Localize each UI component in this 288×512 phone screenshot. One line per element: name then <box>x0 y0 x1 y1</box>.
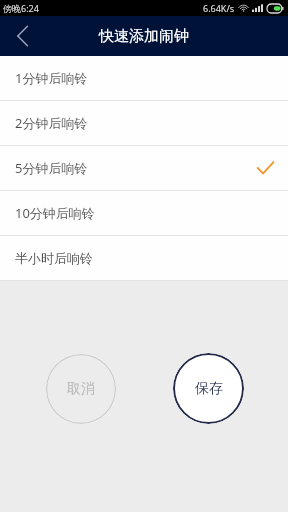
staticText: 2分钟后响铃 <box>15 114 88 132</box>
button[interactable]: 5分钟后响铃 <box>0 146 288 190</box>
staticText: 6.64K/s <box>203 2 235 14</box>
button[interactable]: 2分钟后响铃 <box>0 101 288 145</box>
staticText: 快速添加闹钟 <box>99 27 189 46</box>
button[interactable]: 保存 <box>173 353 244 424</box>
button[interactable]: 半小时后响铃 <box>0 236 288 280</box>
staticText: 半小时后响铃 <box>15 250 93 266</box>
staticText: 取消 <box>67 380 95 398</box>
button[interactable]: Back <box>0 16 44 56</box>
button[interactable]: 1分钟后响铃 <box>0 56 288 100</box>
staticText: 5分钟后响铃 <box>15 159 88 177</box>
staticText: 保存 <box>195 380 223 398</box>
staticText: 傍晚6:24 <box>3 2 39 14</box>
staticText: 10分钟后响铃 <box>15 204 95 222</box>
button[interactable]: 10分钟后响铃 <box>0 191 288 235</box>
button[interactable]: 取消 <box>46 354 116 424</box>
staticText: 1分钟后响铃 <box>15 69 88 87</box>
